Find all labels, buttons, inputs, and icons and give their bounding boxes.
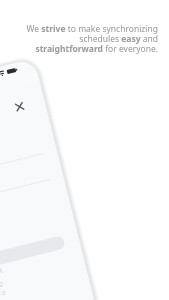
staticText: 3:3 — [0, 289, 6, 297]
staticText: A — [0, 266, 3, 276]
staticText: We strive to make synchronizing schedule… — [8, 23, 158, 55]
staticText: 2 — [0, 280, 4, 290]
button[interactable]: Close — [12, 99, 28, 115]
